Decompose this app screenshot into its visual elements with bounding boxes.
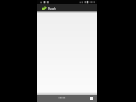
staticText: Puush	[48, 7, 56, 11]
button[interactable]: Home	[57, 95, 65, 102]
